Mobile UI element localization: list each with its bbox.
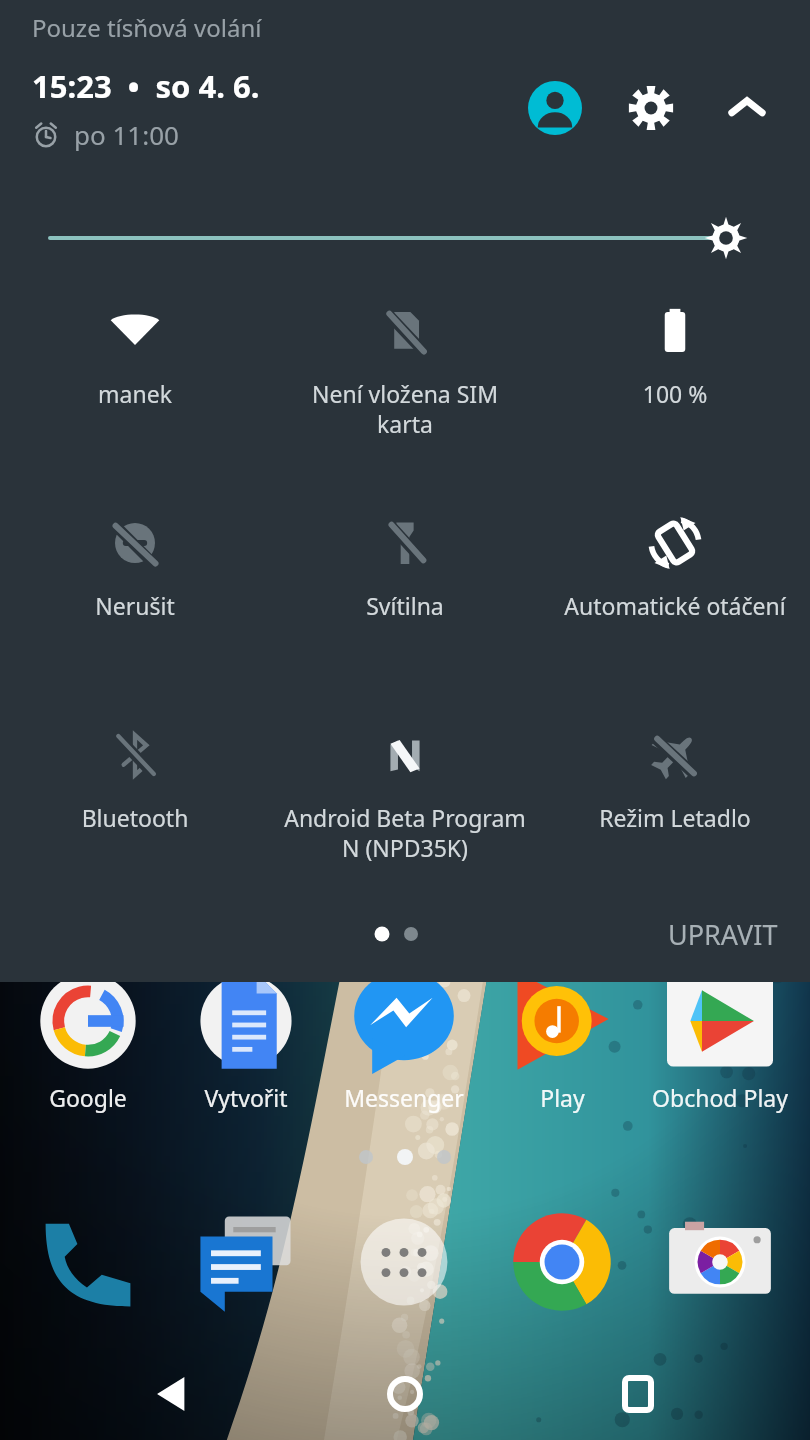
button[interactable]: Google <box>9 968 167 1140</box>
staticText: Není vložena SIM karta <box>280 378 530 440</box>
button[interactable]: Režim Letadlo <box>540 728 810 878</box>
button[interactable]: Recents <box>578 1348 698 1440</box>
button[interactable]: Collapse <box>710 71 784 145</box>
button[interactable]: Automatické otáčení <box>540 516 810 666</box>
staticText: Režim Letadlo <box>550 802 800 833</box>
button[interactable]: All apps <box>344 1202 464 1322</box>
staticText: Google <box>49 1082 127 1113</box>
staticText: Android Beta Program N (NPD35K) <box>280 802 530 864</box>
staticText: Obchod Play <box>652 1082 788 1113</box>
button[interactable]: manek <box>0 304 270 454</box>
button[interactable]: Brightness <box>50 202 760 274</box>
staticText: Nerušit <box>10 590 260 621</box>
staticText: po 11:00 <box>74 117 179 152</box>
staticText: manek <box>10 378 260 409</box>
button[interactable]: User <box>518 71 592 145</box>
staticText: Pouze tísňová volání <box>32 11 262 44</box>
button[interactable]: Chrome <box>502 1202 622 1322</box>
staticText: Messenger <box>344 1082 464 1113</box>
button[interactable]: Obchod Play <box>641 968 799 1140</box>
staticText: 15:23 • so 4. 6. <box>32 65 260 107</box>
button[interactable]: Messages <box>186 1202 306 1322</box>
button[interactable]: Android Beta Program N (NPD35K) <box>270 728 540 878</box>
button[interactable]: Svítilna <box>270 516 540 666</box>
button[interactable]: Messenger <box>325 968 483 1140</box>
button[interactable]: Phone <box>28 1202 148 1322</box>
button[interactable]: Home <box>345 1348 465 1440</box>
button[interactable]: Camera <box>660 1202 780 1322</box>
button[interactable]: Vytvořit <box>167 968 325 1140</box>
staticText: Vytvořit <box>204 1082 288 1113</box>
staticText: Play <box>540 1082 585 1113</box>
button[interactable]: Play <box>483 968 641 1140</box>
staticText: 100 % <box>550 378 800 409</box>
button[interactable]: Settings <box>614 71 688 145</box>
button[interactable]: Nerušit <box>0 516 270 666</box>
staticText: Bluetooth <box>10 802 260 833</box>
button[interactable]: 100 % <box>540 304 810 454</box>
staticText: Svítilna <box>280 590 530 621</box>
staticText: UPRAVIT <box>668 916 778 953</box>
button[interactable]: Back <box>113 1348 233 1440</box>
button[interactable]: Není vložena SIM karta <box>270 304 540 454</box>
button[interactable]: UPRAVIT <box>658 904 788 965</box>
staticText: Automatické otáčení <box>550 590 800 621</box>
button[interactable]: Bluetooth <box>0 728 270 878</box>
